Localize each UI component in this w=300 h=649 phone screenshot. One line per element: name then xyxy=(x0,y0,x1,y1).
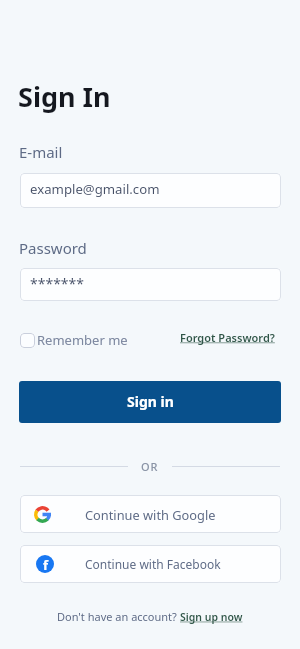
button[interactable]: Continue with Google xyxy=(20,495,281,533)
staticText: Password xyxy=(19,238,87,258)
staticText: f xyxy=(43,556,49,574)
staticText: example@gmail.com xyxy=(30,180,160,198)
staticText: Sign In xyxy=(18,78,111,115)
staticText: Continue with Google xyxy=(85,506,216,523)
button[interactable]: f xyxy=(20,545,281,583)
staticText: OR xyxy=(141,459,159,474)
button[interactable]: Remember me xyxy=(20,331,128,349)
button[interactable]: Sign up now xyxy=(180,610,243,624)
staticText: Don't have an account? xyxy=(57,609,180,624)
button[interactable]: example@gmail.com xyxy=(20,173,281,208)
staticText: E-mail xyxy=(19,142,63,162)
button[interactable]: ******* xyxy=(20,268,281,301)
staticText: Continue with Facebook xyxy=(85,556,221,572)
button[interactable]: Forgot Password? xyxy=(180,330,275,345)
staticText: Remember me xyxy=(37,331,128,349)
staticText: ******* xyxy=(30,274,84,293)
staticText: Sign in xyxy=(127,392,174,411)
button[interactable]: Sign in xyxy=(19,381,281,423)
